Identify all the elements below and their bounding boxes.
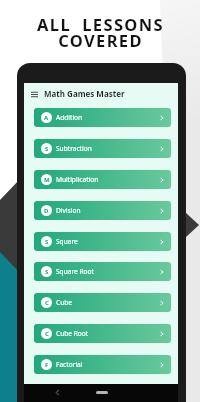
button[interactable]: S xyxy=(34,232,171,251)
button[interactable]: S xyxy=(34,262,171,281)
button[interactable]: D xyxy=(34,201,171,220)
staticText: Cube Root xyxy=(56,329,89,338)
staticText: Division xyxy=(56,206,81,215)
staticText: Cube xyxy=(56,298,73,307)
staticText: S xyxy=(45,145,49,153)
staticText: Square xyxy=(56,237,78,246)
staticText: C xyxy=(45,299,49,307)
staticText: C xyxy=(45,330,49,338)
staticText: ALL LESSONS xyxy=(37,13,164,35)
staticText: Subtraction xyxy=(56,144,92,153)
button[interactable]: M xyxy=(34,170,171,189)
button[interactable]: Open navigation menu xyxy=(29,89,39,99)
staticText: Math Games Master xyxy=(44,88,125,99)
button[interactable]: S xyxy=(34,139,171,158)
staticText: M xyxy=(44,176,50,184)
button[interactable]: A xyxy=(34,108,171,127)
staticText: COVERED xyxy=(58,29,143,51)
staticText: S xyxy=(45,268,49,276)
staticText: Multiplication xyxy=(56,175,99,184)
staticText: A xyxy=(44,114,49,122)
button[interactable]: C xyxy=(34,324,171,343)
button[interactable]: Open navigation menu xyxy=(24,83,178,104)
button[interactable]: C xyxy=(34,293,171,312)
staticText: Addition xyxy=(56,113,83,122)
staticText: F xyxy=(45,361,49,369)
staticText: Square Root xyxy=(56,267,94,276)
button[interactable]: F xyxy=(34,355,171,374)
staticText: D xyxy=(44,207,49,215)
staticText: S xyxy=(45,238,49,246)
staticText: Factorial xyxy=(56,360,83,369)
